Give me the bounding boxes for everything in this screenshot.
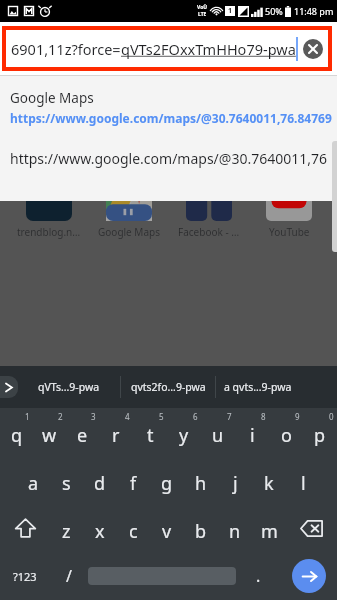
button[interactable]: Go (280, 552, 337, 600)
staticText: trendblog.n… (17, 225, 81, 239)
staticText: m (261, 519, 278, 544)
button[interactable]: YouTube (249, 192, 329, 239)
staticText: qVTs2FOxxTmHHo79-pwa (121, 39, 296, 59)
button[interactable]: trendblog.n… (9, 192, 89, 239)
staticText: VoÜ (197, 4, 208, 11)
button[interactable]: ?123 (0, 552, 50, 600)
staticText: 5 (159, 411, 164, 422)
staticText: 6901,11z?force= (11, 39, 121, 59)
button[interactable]: z (50, 504, 83, 552)
staticText: 6 (193, 411, 198, 422)
button[interactable]: j (218, 456, 252, 504)
button[interactable]: qvts2fo…9-pwa (121, 366, 215, 408)
staticText: 3 (91, 411, 96, 422)
staticText: w (42, 423, 57, 448)
button[interactable]: Facebook - … (169, 192, 249, 239)
button[interactable]: c (116, 504, 150, 552)
staticText: 50% (265, 5, 283, 17)
button[interactable]: 6 (167, 408, 201, 456)
staticText: ?123 (13, 569, 37, 584)
button[interactable]: 7 (201, 408, 235, 456)
staticText: a qvts…9-pwa (224, 380, 292, 394)
button[interactable]: a (17, 456, 50, 504)
staticText: 11:48 pm (294, 5, 334, 17)
button[interactable]: 6901,11z?force= (2, 26, 332, 71)
button[interactable]: 5 (133, 408, 167, 456)
staticText: r (112, 423, 120, 448)
button[interactable]: 0 (303, 408, 337, 456)
button[interactable]: 3 (66, 408, 99, 456)
button[interactable]: qVTs…9-pwa (18, 366, 120, 408)
staticText: o (281, 423, 292, 448)
staticText: h (195, 471, 207, 496)
staticText: l (301, 471, 306, 496)
button[interactable]: / (50, 552, 88, 600)
button[interactable]: s (50, 456, 83, 504)
button[interactable]: k (252, 456, 286, 504)
staticText: x (95, 519, 105, 544)
staticText: f (130, 471, 137, 496)
staticText: 8 (261, 411, 266, 422)
button[interactable]: h (184, 456, 218, 504)
button[interactable]: a qvts…9-pwa (216, 366, 299, 408)
button[interactable]: l (286, 456, 320, 504)
staticText: https://www.google.com/maps/@30.7640011,… (10, 110, 332, 126)
staticText: b (195, 519, 207, 544)
button[interactable]: Backspace (286, 504, 337, 552)
staticText: j (233, 471, 238, 496)
staticText: LTE (198, 11, 207, 18)
staticText: u (212, 423, 224, 448)
staticText: . (256, 565, 261, 587)
staticText: c (129, 519, 138, 544)
button[interactable]: 8 (235, 408, 269, 456)
button[interactable]: . (236, 552, 280, 600)
staticText: q (11, 423, 23, 448)
button[interactable]: d (83, 456, 116, 504)
staticText: a (28, 471, 39, 496)
staticText: v (162, 519, 172, 544)
staticText: d (94, 471, 106, 496)
button[interactable]: n (218, 504, 252, 552)
button[interactable]: f (116, 456, 150, 504)
staticText: 2 (58, 411, 63, 422)
staticText: 4 (125, 411, 130, 422)
staticText: s (62, 471, 71, 496)
button[interactable]: 2 (33, 408, 66, 456)
button[interactable]: b (184, 504, 218, 552)
staticText: g (161, 471, 173, 496)
staticText: qvts2fo…9-pwa (131, 380, 206, 394)
staticText: y (179, 423, 189, 448)
staticText: YouTube (269, 225, 310, 239)
button[interactable]: 9 (269, 408, 303, 456)
staticText: 7 (227, 411, 232, 422)
staticText: k (264, 471, 274, 496)
button[interactable]: m (252, 504, 286, 552)
staticText: t (147, 423, 154, 448)
staticText: p (314, 423, 326, 448)
button[interactable]: Google Maps (89, 192, 169, 239)
button[interactable]: v (150, 504, 184, 552)
staticText: 1 (228, 6, 233, 16)
staticText: e (77, 423, 88, 448)
staticText: 9 (295, 411, 300, 422)
button[interactable]: Google Maps (0, 76, 337, 134)
button[interactable]: g (150, 456, 184, 504)
button[interactable]: x (83, 504, 116, 552)
staticText: n (229, 519, 241, 544)
button[interactable]: Expand suggestions (0, 376, 18, 398)
staticText: 1 (25, 411, 30, 422)
staticText: i (250, 423, 255, 448)
staticText: / (66, 565, 72, 587)
button[interactable]: Clear text (303, 39, 323, 59)
staticText: Facebook - … (178, 225, 240, 239)
staticText: Google Maps (10, 89, 94, 107)
staticText: z (62, 519, 71, 544)
button[interactable]: 4 (99, 408, 133, 456)
button[interactable]: Shift (0, 504, 50, 552)
button[interactable]: 1 (0, 408, 33, 456)
button[interactable]: https://www.google.com/maps/@30.7640011,… (0, 134, 337, 182)
staticText: https://www.google.com/maps/@30.7640011,… (10, 149, 328, 168)
staticText: 0 (329, 411, 334, 422)
staticText: qVTs…9-pwa (38, 380, 100, 394)
